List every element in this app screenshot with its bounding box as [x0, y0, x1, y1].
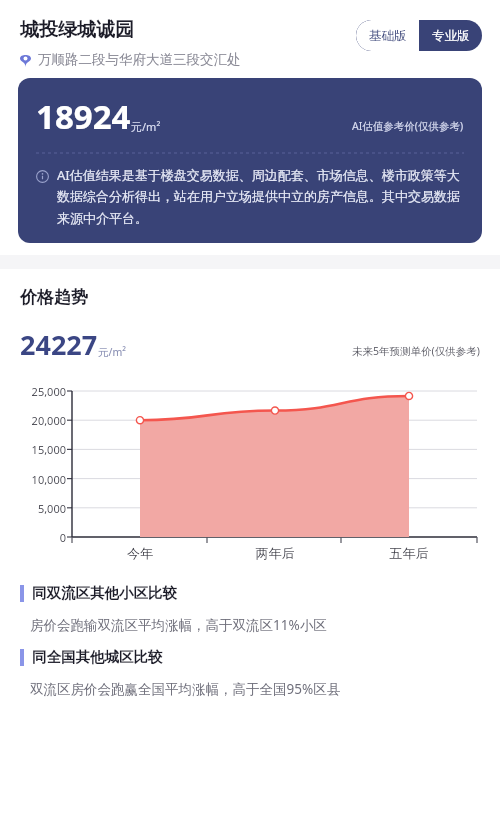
button[interactable]: 基础版: [356, 20, 419, 51]
button[interactable]: 同全国其他城区比较: [0, 648, 500, 698]
staticText: 未来5年预测单价(仅供参考): [352, 344, 480, 358]
staticText: 元/m²: [98, 345, 126, 359]
button[interactable]: 18924: [18, 78, 482, 243]
button[interactable]: 同双流区其他小区比较: [0, 584, 500, 634]
staticText: 24227: [20, 326, 98, 363]
staticText: 25,000: [0, 384, 66, 399]
staticText: 五年后: [379, 545, 439, 561]
button[interactable]: 专业版: [419, 20, 482, 51]
staticText: 0: [0, 530, 66, 545]
staticText: AI估值结果是基于楼盘交易数据、周边配套、市场信息、楼市政策等大数据综合分析得出…: [57, 166, 464, 227]
staticText: 价格趋势: [20, 287, 88, 308]
staticText: 专业版: [432, 28, 470, 44]
staticText: 15,000: [0, 442, 66, 457]
staticText: 10,000: [0, 472, 66, 487]
staticText: 同双流区其他小区比较: [32, 584, 177, 602]
staticText: 万顺路二段与华府大道三段交汇处: [38, 51, 241, 68]
staticText: 两年后: [245, 545, 305, 561]
staticText: 城投绿城诚园: [20, 18, 134, 42]
staticText: 房价会跑输双流区平均涨幅，高于双流区11%小区: [30, 616, 327, 634]
staticText: 基础版: [369, 28, 407, 44]
staticText: 今年: [110, 545, 170, 561]
staticText: 5,000: [0, 501, 66, 516]
staticText: 18924: [36, 94, 131, 139]
staticText: 元/m²: [131, 119, 161, 134]
staticText: 同全国其他城区比较: [32, 648, 163, 666]
staticText: 20,000: [0, 413, 66, 428]
staticText: AI估值参考价(仅供参考): [352, 119, 464, 133]
staticText: 双流区房价会跑赢全国平均涨幅，高于全国95%区县: [30, 680, 341, 698]
